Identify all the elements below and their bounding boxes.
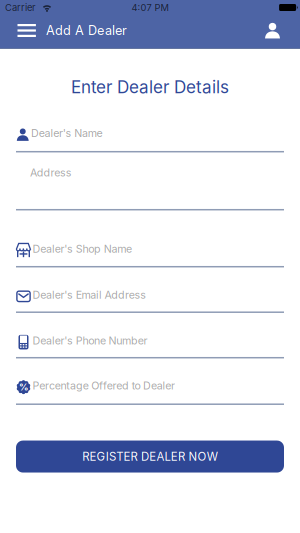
button[interactable]: Address bbox=[16, 168, 284, 210]
staticText: Dealer's Email Address bbox=[32, 288, 146, 301]
button[interactable]: % bbox=[16, 380, 284, 405]
button[interactable]: Dealer's Phone Number bbox=[16, 335, 284, 358]
staticText: Enter Dealer Details bbox=[71, 77, 229, 97]
button[interactable]: Dealer's Email Address bbox=[16, 289, 284, 313]
staticText: Dealer's Shop Name bbox=[32, 242, 132, 255]
button[interactable]: Dealer's Shop Name bbox=[16, 243, 284, 267]
staticText: Carrier bbox=[5, 2, 36, 13]
staticText: Dealer's Name bbox=[31, 127, 103, 139]
staticText: 4:07 PM bbox=[131, 2, 168, 13]
button[interactable]: Dealer's Name bbox=[16, 127, 284, 152]
staticText: REGISTER DEALER NOW bbox=[82, 450, 218, 463]
button[interactable]: Menu bbox=[0, 24, 46, 37]
staticText: % bbox=[19, 381, 28, 393]
staticText: Address bbox=[30, 166, 72, 179]
staticText: Percentage Offered to Dealer bbox=[32, 379, 175, 392]
button[interactable]: Profile bbox=[264, 22, 300, 39]
staticText: Dealer's Phone Number bbox=[32, 334, 147, 347]
staticText: Add A Dealer bbox=[46, 23, 127, 38]
button[interactable]: REGISTER DEALER NOW bbox=[16, 441, 284, 473]
